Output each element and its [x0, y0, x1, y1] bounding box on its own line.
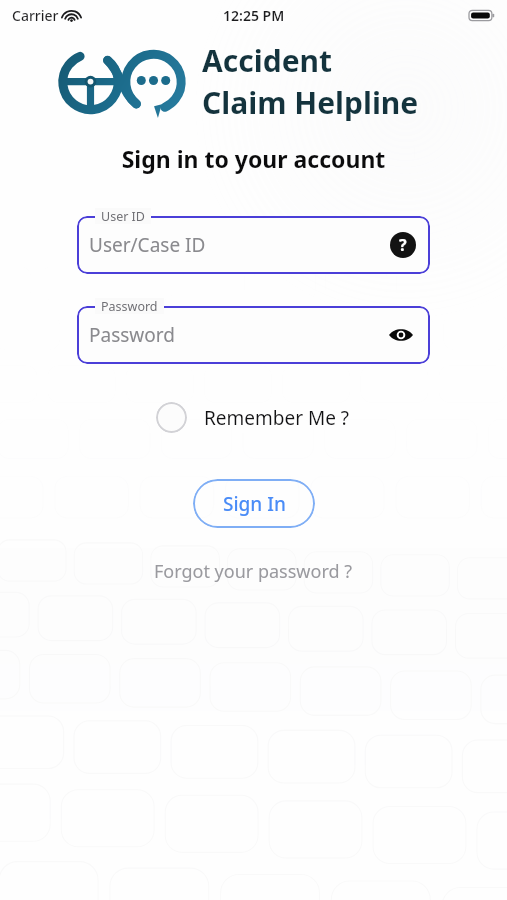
button[interactable]: Show password: [386, 320, 416, 350]
staticText: ?: [399, 234, 407, 256]
staticText: Password: [89, 322, 175, 348]
staticText: Accident: [202, 40, 333, 81]
staticText: User/Case ID: [89, 232, 206, 258]
staticText: Password: [101, 298, 158, 314]
button[interactable]: [77, 306, 430, 364]
staticText: 12:25 PM: [223, 6, 285, 25]
button[interactable]: Help: [390, 232, 416, 258]
staticText: Remember Me ?: [204, 405, 350, 431]
staticText: Carrier: [12, 6, 59, 25]
button[interactable]: Sign In: [193, 479, 315, 528]
button[interactable]: [77, 216, 430, 274]
staticText: Sign in to your account: [0, 143, 507, 174]
button[interactable]: Forgot your password ?: [144, 555, 363, 588]
staticText: Forgot your password ?: [154, 559, 353, 584]
button[interactable]: Remember Me ?: [156, 402, 350, 433]
staticText: Sign In: [223, 491, 286, 517]
staticText: Claim Helpline: [202, 82, 419, 123]
staticText: User ID: [101, 208, 145, 224]
other: Accident Claim Helpline logo: [52, 43, 192, 121]
